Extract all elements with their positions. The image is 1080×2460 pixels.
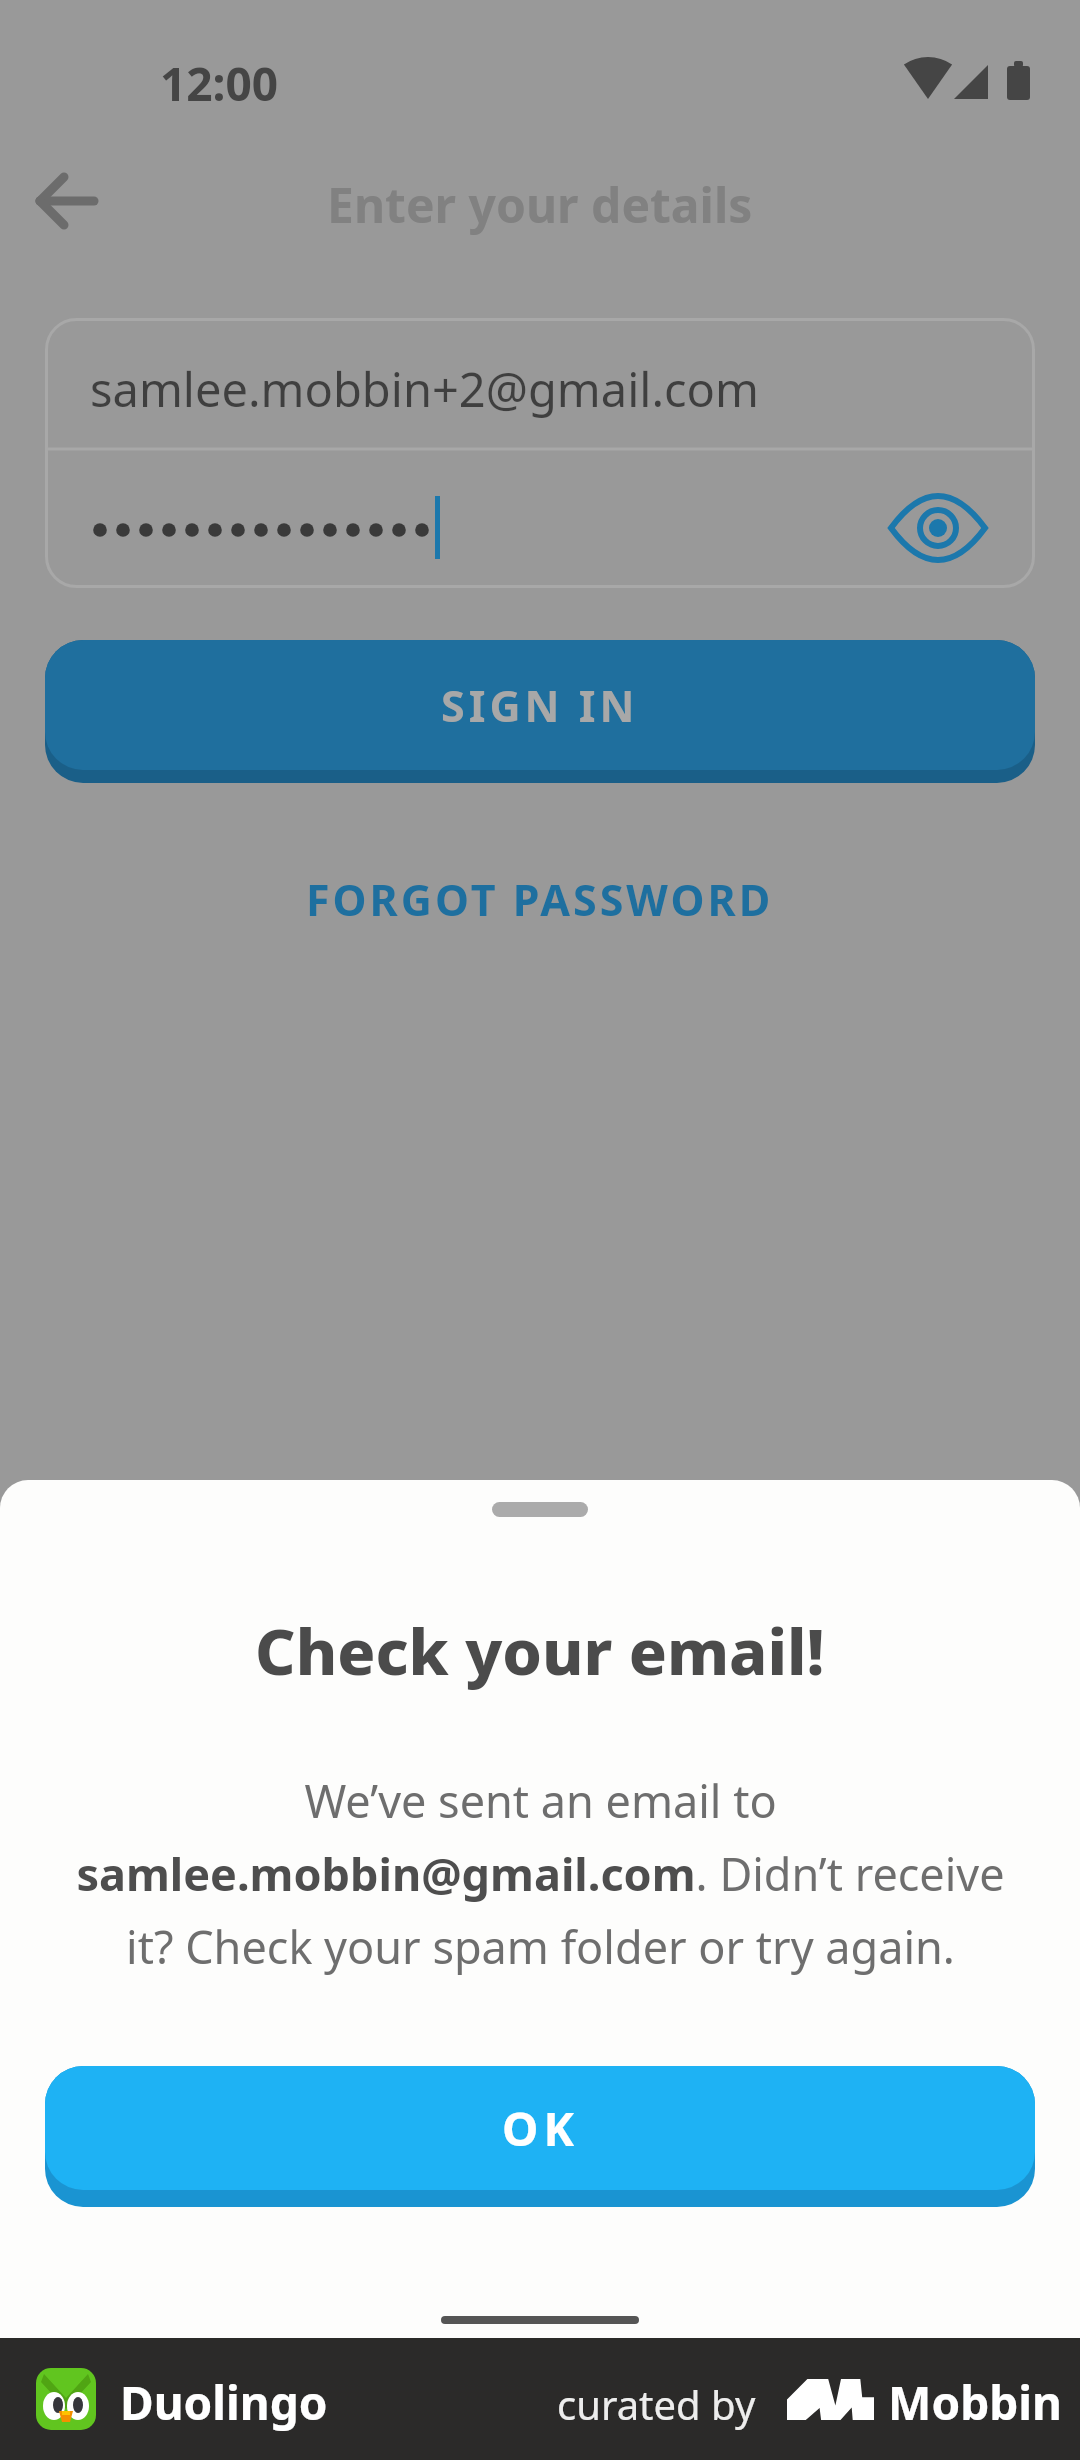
- button[interactable]: [880, 490, 995, 570]
- button[interactable]: [28, 165, 103, 235]
- button[interactable]: SIGN IN: [45, 640, 1035, 783]
- staticText: Mobbin: [888, 2371, 1062, 2434]
- staticText: SIGN IN: [441, 676, 639, 735]
- staticText: curated by: [557, 2377, 756, 2431]
- staticText: Check your email!: [255, 1608, 825, 1694]
- staticText: We’ve sent an email to samlee.mobbin@gma…: [76, 1770, 1005, 1977]
- staticText: OK: [502, 2097, 579, 2160]
- staticText: Enter your details: [327, 172, 753, 237]
- button[interactable]: FORGOT PASSWORD: [306, 870, 774, 929]
- button[interactable]: OK: [45, 2066, 1035, 2207]
- staticText: samlee.mobbin+2@gmail.com: [90, 357, 759, 421]
- staticText: FORGOT PASSWORD: [306, 870, 774, 929]
- staticText: 12:00: [160, 52, 279, 115]
- staticText: Duolingo: [120, 2371, 328, 2434]
